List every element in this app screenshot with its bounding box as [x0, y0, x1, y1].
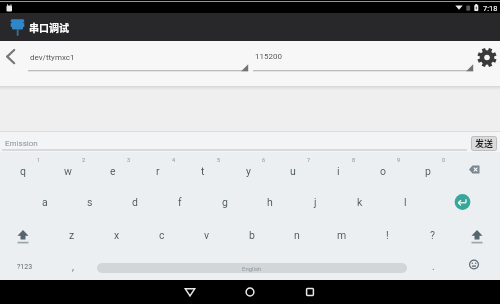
staticText: 8 — [352, 157, 356, 163]
staticText: j — [314, 196, 317, 208]
staticText: c — [159, 229, 165, 241]
staticText: dev/ttymxc1 — [30, 53, 75, 62]
staticText: ! — [386, 229, 389, 241]
button[interactable] — [292, 187, 337, 218]
button[interactable] — [320, 219, 364, 250]
staticText: p — [425, 165, 431, 177]
staticText: e — [110, 165, 116, 177]
staticText: x — [114, 229, 120, 241]
button[interactable] — [410, 251, 454, 279]
button[interactable] — [185, 219, 229, 250]
staticText: 115200 — [255, 52, 282, 61]
button[interactable] — [475, 46, 500, 70]
button[interactable] — [252, 44, 450, 74]
button[interactable] — [26, 44, 250, 74]
staticText: k — [357, 196, 363, 208]
button[interactable] — [50, 219, 94, 250]
staticText: b — [249, 229, 255, 241]
button[interactable] — [460, 251, 490, 279]
staticText: 2 — [82, 157, 86, 163]
staticText: 3 — [127, 157, 131, 163]
button[interactable] — [455, 155, 500, 186]
staticText: m — [337, 229, 347, 241]
staticText: 9 — [397, 157, 401, 163]
button[interactable] — [275, 219, 319, 250]
button[interactable] — [135, 155, 180, 186]
button[interactable] — [157, 187, 202, 218]
button[interactable] — [202, 187, 247, 218]
staticText: u — [290, 165, 296, 177]
staticText: 5 — [217, 157, 221, 163]
button[interactable] — [405, 155, 450, 186]
button[interactable] — [315, 155, 360, 186]
button[interactable] — [90, 155, 135, 186]
button[interactable] — [455, 219, 499, 250]
staticText: . — [432, 261, 435, 273]
staticText: n — [294, 229, 300, 241]
button[interactable]: English — [97, 263, 407, 273]
staticText: f — [178, 196, 182, 208]
button[interactable] — [140, 219, 184, 250]
staticText: t — [201, 165, 205, 177]
staticText: g — [222, 196, 228, 208]
staticText: , — [72, 261, 74, 273]
staticText: 7:18 — [483, 4, 498, 13]
button[interactable] — [45, 155, 90, 186]
staticText: ?123 — [17, 263, 33, 271]
staticText: d — [132, 196, 138, 208]
staticText: English — [242, 265, 262, 272]
button[interactable] — [112, 187, 157, 218]
button[interactable] — [0, 251, 45, 279]
button[interactable] — [22, 187, 67, 218]
button[interactable] — [95, 219, 139, 250]
button[interactable] — [410, 219, 454, 250]
staticText: 串口调试 — [29, 20, 69, 34]
button[interactable] — [290, 280, 330, 304]
staticText: ? — [430, 229, 435, 241]
staticText: 4 — [172, 157, 176, 163]
button[interactable] — [0, 44, 24, 70]
button[interactable] — [365, 219, 409, 250]
staticText: 发送 — [475, 137, 494, 150]
button[interactable] — [50, 251, 94, 279]
button[interactable] — [0, 155, 45, 186]
staticText: y — [246, 165, 251, 177]
staticText: 1 — [37, 157, 41, 163]
button[interactable] — [1, 219, 45, 250]
button[interactable]: 发送 — [471, 136, 497, 151]
staticText: z — [69, 229, 75, 241]
button[interactable] — [270, 155, 315, 186]
button[interactable] — [180, 155, 225, 186]
button[interactable] — [247, 187, 292, 218]
staticText: 0 — [442, 157, 446, 163]
staticText: q — [20, 165, 26, 177]
staticText: a — [42, 196, 48, 208]
button[interactable] — [225, 155, 270, 186]
staticText: o — [380, 165, 386, 177]
staticText: l — [404, 196, 407, 208]
staticText: Emission — [5, 139, 38, 148]
staticText: r — [156, 165, 160, 177]
button[interactable] — [337, 187, 382, 218]
staticText: 7 — [307, 157, 311, 163]
staticText: i — [337, 165, 340, 177]
button[interactable] — [67, 187, 112, 218]
button[interactable] — [448, 187, 479, 218]
button[interactable] — [230, 219, 274, 250]
button[interactable] — [382, 187, 427, 218]
staticText: v — [204, 229, 210, 241]
button[interactable] — [170, 280, 210, 304]
button[interactable] — [230, 280, 270, 304]
button[interactable] — [360, 155, 405, 186]
staticText: h — [267, 196, 273, 208]
staticText: w — [64, 165, 72, 177]
staticText: 6 — [262, 157, 266, 163]
staticText: s — [87, 196, 93, 208]
